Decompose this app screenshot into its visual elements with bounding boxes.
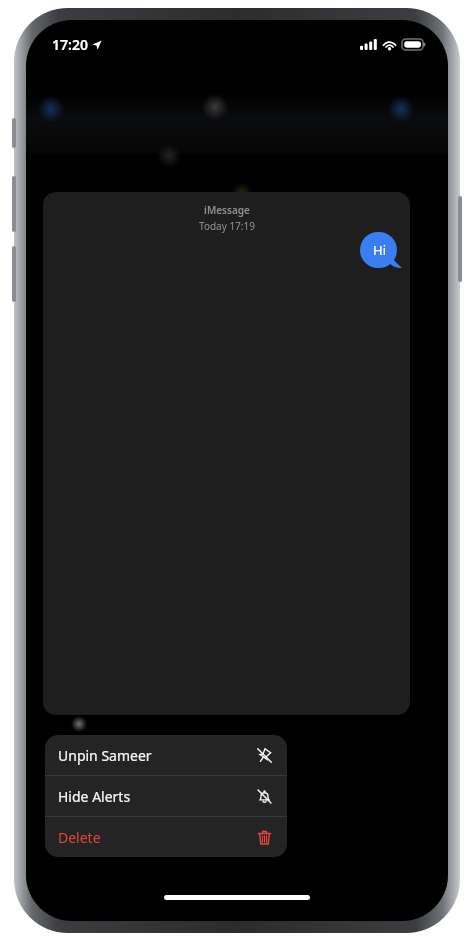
button[interactable]: Hide Alerts	[45, 776, 287, 816]
staticText: 17:20	[52, 35, 88, 54]
staticText: iMessage	[204, 203, 250, 217]
button[interactable]: Delete	[45, 817, 287, 857]
other: Hide Alerts	[256, 788, 273, 805]
staticText: Delete	[58, 828, 256, 847]
staticText: Hide Alerts	[58, 787, 256, 806]
button[interactable]: Unpin Sameer	[45, 735, 287, 775]
staticText: Hi	[373, 241, 386, 259]
other: Delete	[256, 829, 273, 846]
staticText: Today 17:19	[199, 219, 255, 233]
staticText: Unpin Sameer	[58, 746, 256, 765]
other: Unpin	[256, 747, 273, 764]
button[interactable]: iMessage	[43, 192, 410, 715]
